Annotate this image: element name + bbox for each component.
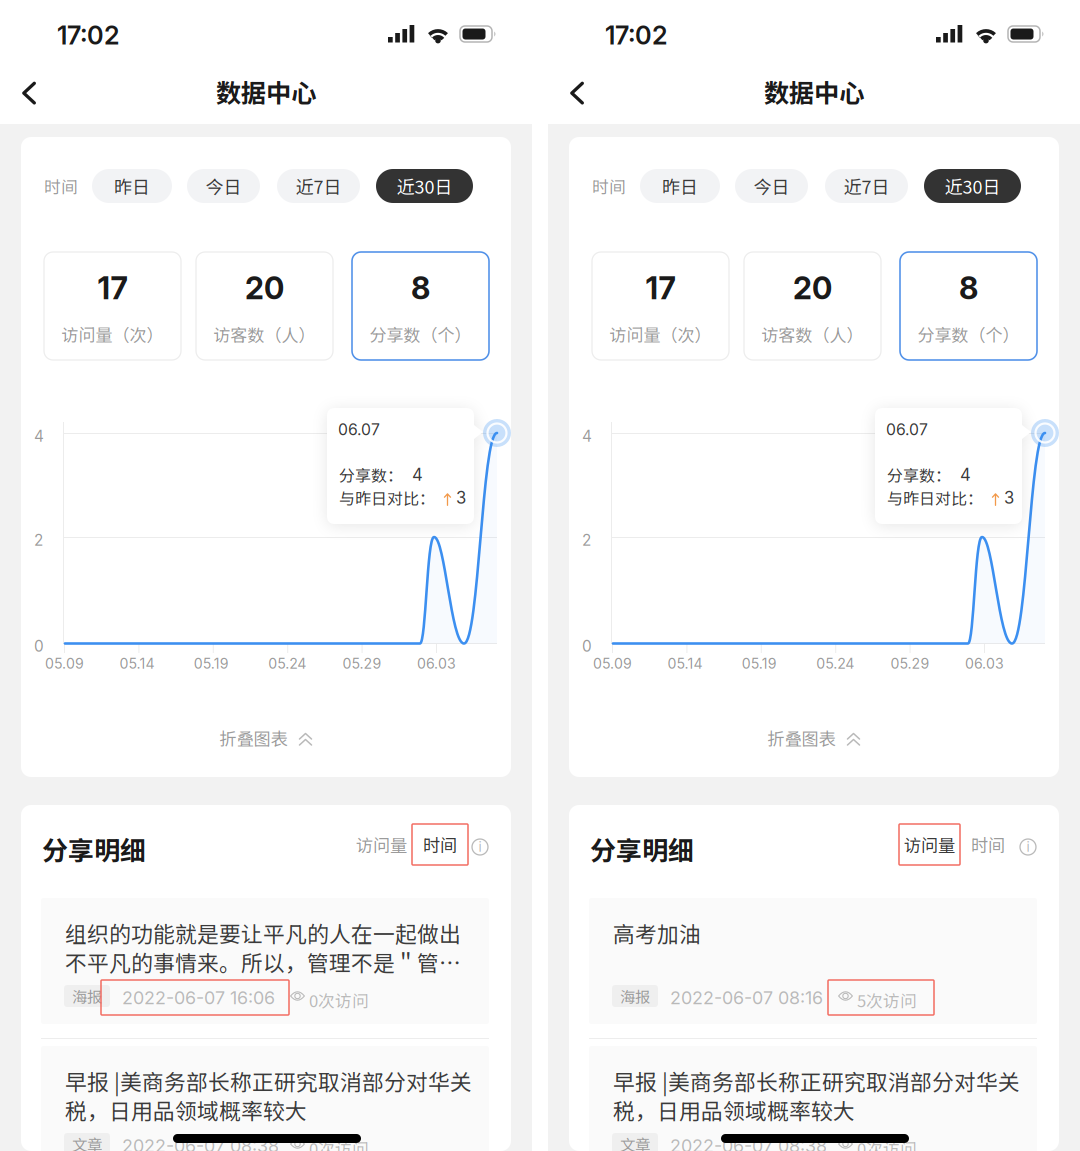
staticText: 3 [1004,487,1014,508]
staticText: 昨日 [662,173,698,199]
staticText: 05.29 [343,655,382,672]
staticText: 17 [97,269,127,306]
button[interactable]: 17 [592,252,729,360]
staticText: 与昨日对比： [887,486,983,509]
staticText: 访客数（人） [761,322,863,346]
staticText: 近7日 [295,173,341,199]
staticText: 昨日 [114,173,150,199]
staticText: 访问量 [356,832,407,857]
staticText: 06.07 [886,420,928,439]
staticText: 分享数： [339,463,403,486]
button[interactable]: Info [469,836,491,858]
staticText: 05.24 [816,655,854,672]
staticText: 时间 [423,832,457,857]
button[interactable]: 组织的功能就是要让平凡的人在一起做出 [41,898,489,1024]
staticText: i [1026,839,1029,855]
staticText: 4 [34,427,44,446]
button[interactable]: 访问量 [899,824,960,865]
button[interactable]: 近7日 [277,169,360,203]
button[interactable]: Back [7,71,51,115]
staticText: 05.09 [593,655,632,672]
button[interactable]: 近30日 [376,169,473,203]
staticText: 税，日用品领域概率较大 [613,1094,855,1125]
button[interactable]: Back [555,71,599,115]
staticText: 近30日 [944,173,1000,199]
staticText: 时间 [592,174,626,198]
staticText: 时间 [971,832,1005,857]
staticText: 近7日 [843,173,889,199]
staticText: 4 [582,427,592,446]
staticText: 2022-06-07 08:38 [122,1135,279,1151]
staticText: 4 [960,464,971,485]
button[interactable]: 早报 |美商务部长称正研究取消部分对华关 [589,1046,1037,1151]
button[interactable]: 8 [352,252,489,360]
staticText: 访客数（人） [213,322,315,346]
staticText: 海报 [72,985,102,1007]
staticText: 高考加油 [613,917,701,948]
staticText: 早报 |美商务部长称正研究取消部分对华关 [65,1065,472,1096]
staticText: 数据中心 [764,73,864,110]
staticText: 访问量 [904,832,955,857]
button[interactable]: 早报 |美商务部长称正研究取消部分对华关 [41,1046,489,1151]
staticText: 今日 [753,173,789,199]
staticText: 分享明细 [590,830,694,868]
staticText: 访问量（次） [609,322,711,346]
staticText: 组织的功能就是要让平凡的人在一起做出 [65,917,461,948]
staticText: 分享数： [887,463,951,486]
button[interactable]: 8 [900,252,1037,360]
staticText: 2022-06-07 08:38 [670,1135,827,1151]
staticText: 分享明细 [42,830,146,868]
button[interactable]: 昨日 [92,169,172,203]
staticText: 今日 [205,173,241,199]
staticText: 0 [582,637,592,656]
button[interactable]: 近30日 [924,169,1021,203]
staticText: 20 [793,269,832,306]
staticText: 0次访问 [309,1136,369,1151]
staticText: 0次访问 [857,1136,917,1151]
button[interactable]: 时间 [960,824,1016,865]
staticText: 时间 [44,174,78,198]
staticText: i [478,839,481,855]
staticText: 近30日 [396,173,452,199]
button[interactable]: 昨日 [640,169,720,203]
staticText: 折叠图表 [219,725,287,751]
staticText: 17 [645,269,675,306]
staticText: 06.03 [417,655,456,672]
staticText: 4 [412,464,423,485]
button[interactable]: Info [1017,836,1039,858]
button[interactable]: 近7日 [825,169,908,203]
button[interactable]: 访问量 [351,824,412,865]
button[interactable]: 20 [196,252,333,360]
staticText: 与昨日对比： [339,486,435,509]
staticText: 05.09 [45,655,84,672]
staticText: 不平凡的事情来。所以，管理不是＂管… [65,946,461,977]
staticText: 分享数（个） [369,322,471,346]
staticText: 文章 [72,1133,102,1151]
button[interactable]: 今日 [187,169,260,203]
staticText: 访问量（次） [61,322,163,346]
staticText: 数据中心 [216,73,316,110]
staticText: 05.29 [891,655,930,672]
button[interactable]: 折叠图表 [21,719,511,757]
staticText: 2022-06-07 08:16 [670,987,823,1009]
staticText: 8 [411,269,430,306]
staticText: 06.07 [338,420,380,439]
button[interactable]: 17 [44,252,181,360]
staticText: 5次访问 [857,988,917,1012]
staticText: 05.14 [119,655,154,672]
button[interactable]: 20 [744,252,881,360]
button[interactable]: 折叠图表 [569,719,1059,757]
staticText: 0 [34,637,44,656]
button[interactable]: 高考加油 [589,898,1037,1024]
staticText: 3 [456,487,466,508]
staticText: 0次访问 [309,988,369,1012]
button[interactable]: 时间 [412,824,468,865]
staticText: 文章 [620,1133,650,1151]
staticText: 早报 |美商务部长称正研究取消部分对华关 [613,1065,1020,1096]
staticText: 05.24 [268,655,306,672]
staticText: 06.03 [965,655,1004,672]
staticText: 20 [245,269,284,306]
staticText: 2 [582,531,591,550]
button[interactable]: 今日 [735,169,808,203]
staticText: 8 [959,269,978,306]
